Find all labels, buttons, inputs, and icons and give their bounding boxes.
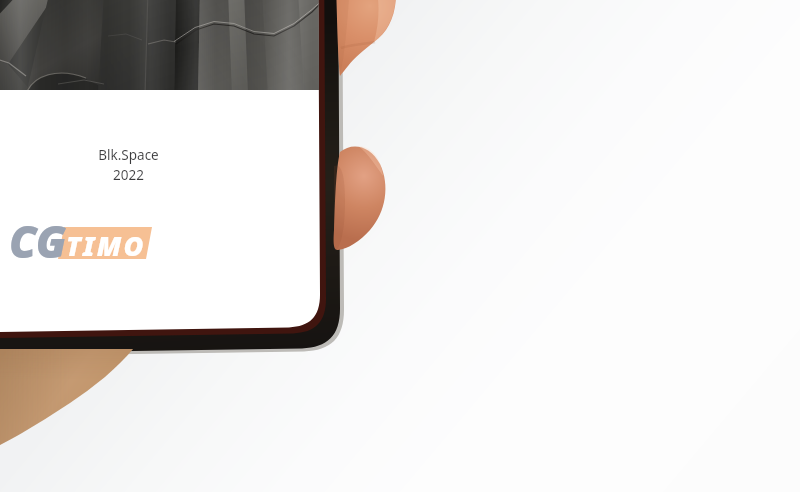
staticText: Blk.Space 2022 <box>98 146 159 184</box>
button[interactable]: Blk.Space 2022 <box>98 146 218 184</box>
staticText: TIMO <box>66 227 146 264</box>
staticText: CG <box>9 211 67 271</box>
button[interactable]: CG <box>9 211 67 271</box>
